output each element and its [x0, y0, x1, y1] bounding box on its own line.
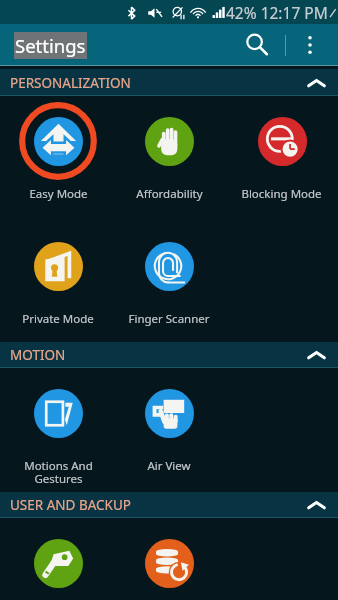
staticText: Finger Scanner [128, 311, 210, 327]
button[interactable]: Air View [117, 374, 221, 486]
button[interactable]: Private Mode [6, 227, 110, 339]
staticText: Air View [147, 458, 191, 474]
button[interactable]: Affordability [117, 102, 221, 214]
staticText: Affordability [136, 186, 203, 202]
staticText: Settings [15, 33, 86, 58]
button[interactable]: MOTION [0, 342, 338, 368]
button[interactable]: Setting [6, 524, 110, 600]
button[interactable]: PERSONALIZATION [0, 69, 338, 96]
staticText: PERSONALIZATION [10, 74, 131, 92]
button[interactable]: USER AND BACKUP [0, 492, 338, 518]
button[interactable]: Settings [15, 33, 86, 58]
staticText: 42% 12:17 PM [226, 2, 328, 23]
staticText: Blocking Mode [241, 186, 322, 202]
staticText: Private Mode [22, 311, 94, 327]
staticText: MOTION [10, 346, 66, 364]
button[interactable]: Motions And Gestures [6, 374, 110, 486]
button[interactable]: Blocking Mode [229, 102, 333, 214]
staticText: Easy Mode [29, 186, 88, 202]
staticText: Motions And Gestures [24, 458, 93, 486]
button[interactable]: Setting [117, 524, 221, 600]
button[interactable]: More options [290, 25, 330, 65]
staticText: USER AND BACKUP [10, 496, 132, 514]
button[interactable]: Search [236, 24, 278, 66]
button[interactable]: Finger Scanner [117, 227, 221, 339]
button[interactable]: Easy Mode [6, 102, 110, 214]
